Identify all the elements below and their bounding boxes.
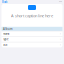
- button[interactable]: Back: [1, 0, 7, 4]
- button[interactable]: Name: [1, 31, 62, 36]
- staticText: Album: [3, 27, 12, 31]
- button[interactable]: Size: [1, 42, 62, 47]
- button[interactable]: Type: [1, 36, 62, 42]
- staticText: Type: [3, 37, 9, 41]
- staticText: ›: [60, 32, 61, 35]
- staticText: ›: [60, 43, 61, 46]
- button[interactable]: More: [58, 0, 62, 4]
- staticText: ›: [60, 37, 61, 41]
- staticText: •••: [59, 0, 62, 4]
- staticText: Back: [2, 0, 7, 4]
- staticText: Name: [3, 32, 10, 35]
- staticText: Size: [3, 43, 8, 46]
- staticText: A short caption line here: [11, 13, 53, 18]
